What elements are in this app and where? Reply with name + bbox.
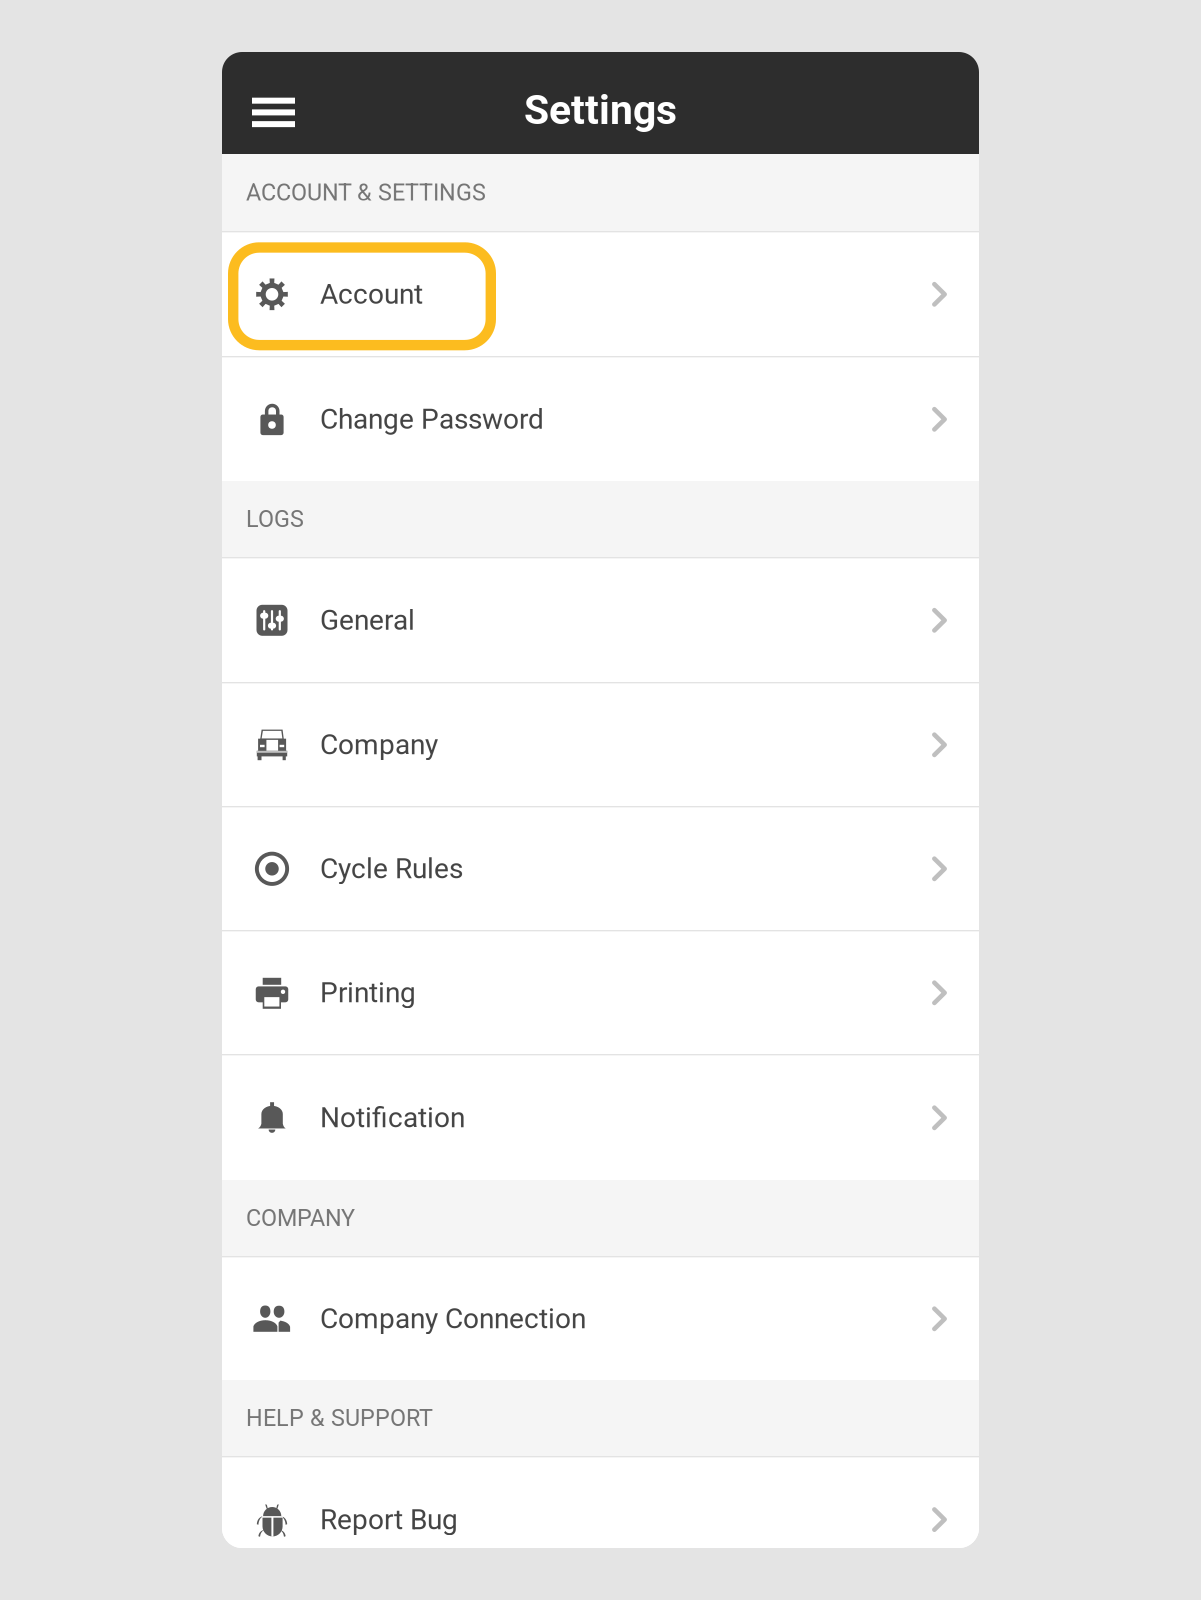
button[interactable]: General xyxy=(222,559,979,682)
button[interactable]: Cycle Rules xyxy=(222,808,979,930)
staticText: Report Bug xyxy=(320,1503,458,1536)
staticText: LOGS xyxy=(246,505,304,533)
button[interactable]: Notification xyxy=(222,1056,979,1180)
button[interactable]: Change Password xyxy=(222,358,979,481)
staticText: ACCOUNT & SETTINGS xyxy=(246,179,486,206)
staticText: Settings xyxy=(524,86,677,134)
staticText: Company Connection xyxy=(320,1302,586,1335)
staticText: Change Password xyxy=(320,403,544,436)
button[interactable]: Company xyxy=(222,684,979,806)
button[interactable]: Report Bug xyxy=(222,1458,979,1582)
staticText: Company xyxy=(320,728,438,761)
staticText: General xyxy=(320,604,415,637)
staticText: Account xyxy=(320,278,423,311)
button[interactable]: Menu xyxy=(237,62,310,144)
staticText: COMPANY xyxy=(246,1204,355,1232)
staticText: Cycle Rules xyxy=(320,852,463,885)
button[interactable]: Printing xyxy=(222,932,979,1054)
button[interactable]: Company Connection xyxy=(222,1258,979,1380)
button[interactable]: Account xyxy=(222,233,979,356)
staticText: Notification xyxy=(320,1101,465,1134)
staticText: HELP & SUPPORT xyxy=(246,1404,433,1432)
staticText: Printing xyxy=(320,976,416,1009)
